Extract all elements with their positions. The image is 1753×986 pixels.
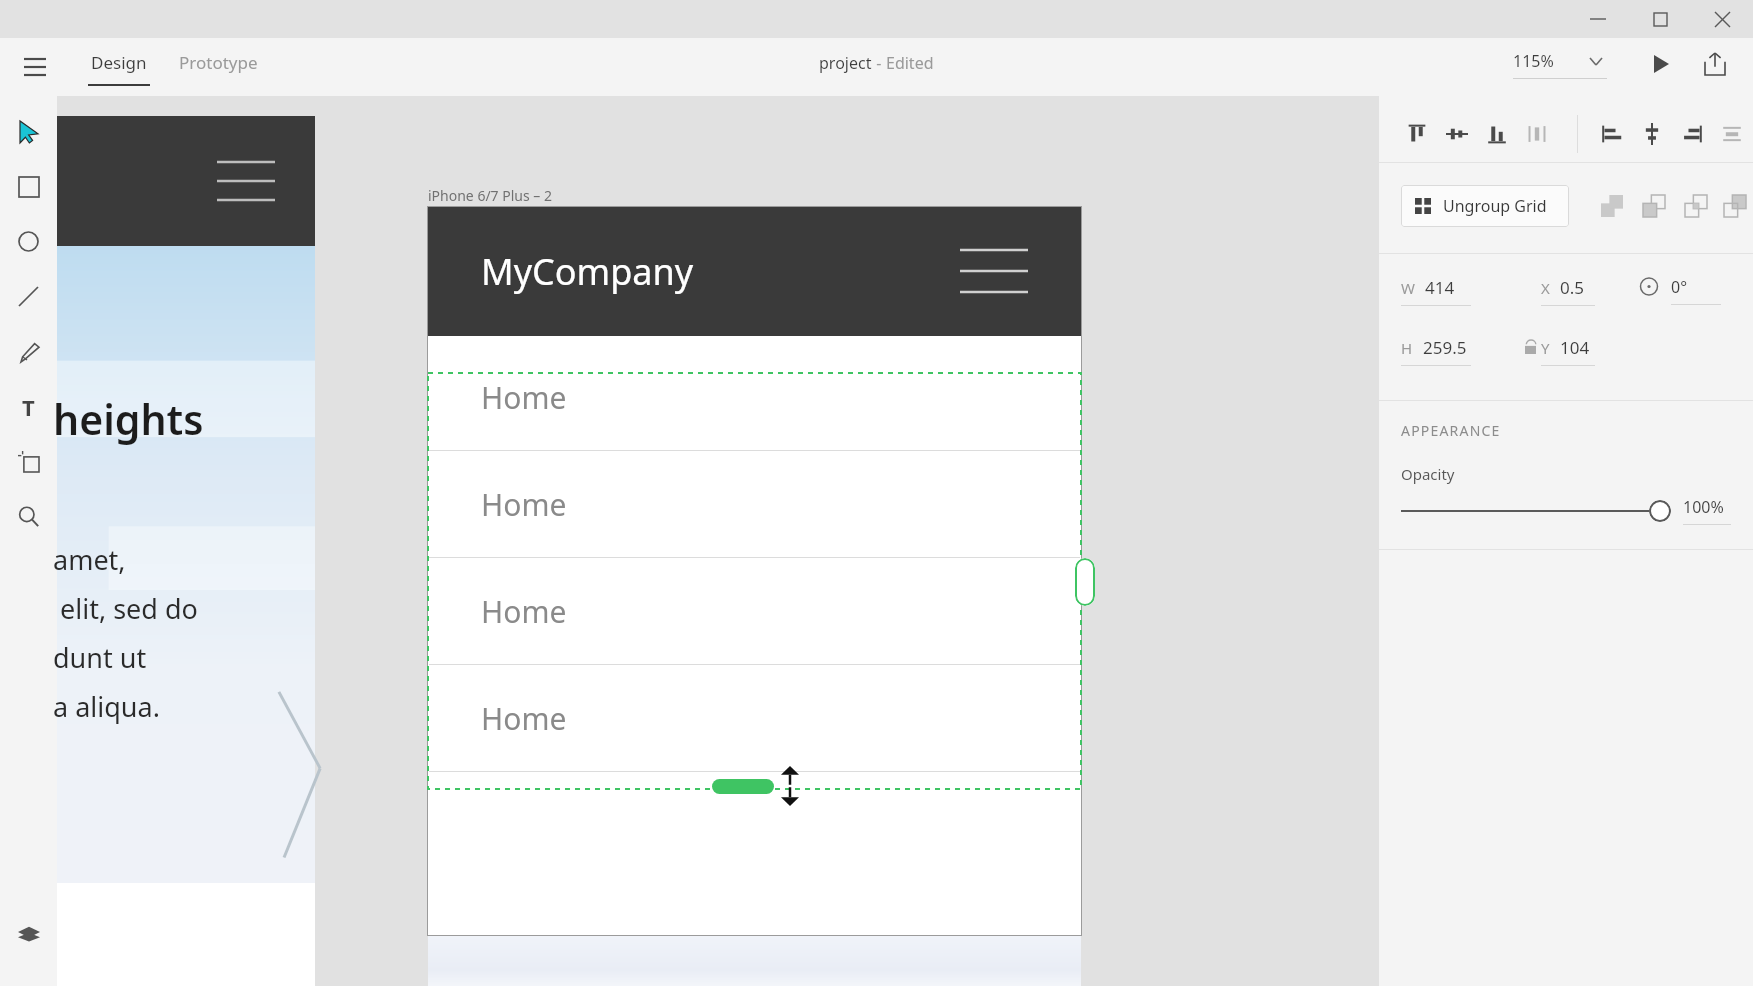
staticText: 104: [1560, 336, 1590, 359]
button[interactable]: Boolean op 3: [1675, 185, 1717, 227]
staticText: 115%: [1513, 50, 1554, 72]
staticText: a aliqua.: [53, 688, 160, 725]
staticText: project: [819, 52, 872, 74]
staticText: W: [1401, 278, 1415, 298]
staticText: H: [1401, 338, 1413, 358]
button[interactable]: Rectangle: [0, 159, 57, 214]
button[interactable]: Play preview: [1639, 42, 1683, 86]
button[interactable]: Distribute horizontally: [1712, 114, 1752, 154]
staticText: APPEARANCE: [1401, 421, 1501, 440]
staticText: 414: [1425, 276, 1455, 299]
staticText: Opacity: [1401, 464, 1455, 484]
button[interactable]: Align middle: [1437, 114, 1477, 154]
button[interactable]: Align top: [1397, 114, 1437, 154]
button[interactable]: Align left: [1592, 114, 1632, 154]
staticText: X: [1541, 278, 1550, 298]
staticText: iPhone 6/7 Plus – 2: [428, 186, 552, 205]
staticText: T: [22, 392, 35, 422]
staticText: -: [872, 52, 886, 74]
staticText: amet,: [53, 541, 126, 578]
staticText: Prototype: [179, 51, 258, 74]
staticText: Home: [481, 591, 567, 632]
staticText: elit, sed do: [53, 590, 198, 627]
button[interactable]: Boolean op 1: [1591, 185, 1633, 227]
button[interactable]: Distribute vertically: [1517, 114, 1557, 154]
button[interactable]: Home: [427, 558, 1082, 665]
button[interactable]: Home: [427, 451, 1082, 558]
staticText: Design: [91, 51, 147, 74]
button[interactable]: Resize handle: [712, 779, 774, 794]
button[interactable]: Ungroup Grid: [1401, 185, 1569, 227]
button[interactable]: Minimize: [1567, 0, 1629, 38]
staticText: 100%: [1683, 496, 1724, 518]
button[interactable]: Zoom: [0, 489, 57, 544]
staticText: MyCompany: [481, 247, 694, 296]
button[interactable]: Share: [1693, 42, 1737, 86]
button[interactable]: Artboard: [0, 434, 57, 489]
button[interactable]: Pen: [0, 324, 57, 379]
button[interactable]: Opacity slider: [1401, 499, 1669, 523]
button[interactable]: Menu: [8, 40, 62, 94]
button[interactable]: Scroll handle: [1075, 558, 1095, 606]
button[interactable]: Layers: [0, 907, 57, 962]
staticText: Ungroup Grid: [1443, 195, 1547, 217]
button[interactable]: Prototype: [172, 38, 264, 96]
button[interactable]: Home: [427, 665, 1082, 772]
button[interactable]: Close: [1691, 0, 1753, 38]
button[interactable]: Y: [1541, 336, 1621, 366]
staticText: 259.5: [1423, 336, 1467, 359]
button[interactable]: H: [1401, 336, 1497, 366]
button[interactable]: Text: [0, 379, 57, 434]
button[interactable]: Design: [86, 38, 152, 96]
staticText: dunt ut: [53, 639, 147, 676]
staticText: Home: [481, 377, 567, 418]
button[interactable]: Maximize: [1629, 0, 1691, 38]
button[interactable]: Ellipse: [0, 214, 57, 269]
staticText: Y: [1541, 338, 1550, 358]
button[interactable]: Home: [427, 344, 1082, 451]
staticText: Home: [481, 698, 567, 739]
button[interactable]: Align bottom: [1477, 114, 1517, 154]
button[interactable]: Boolean op 2: [1633, 185, 1675, 227]
staticText: 0.5: [1560, 276, 1585, 299]
button[interactable]: Line: [0, 269, 57, 324]
staticText: 0°: [1671, 276, 1688, 298]
button[interactable]: project: [819, 52, 934, 74]
button[interactable]: X: [1541, 276, 1621, 306]
button[interactable]: W: [1401, 276, 1497, 306]
button[interactable]: Align right: [1672, 114, 1712, 154]
staticText: Home: [481, 484, 567, 525]
button[interactable]: 115%: [1513, 50, 1623, 79]
staticText: heights: [53, 391, 204, 447]
button[interactable]: Boolean op 4: [1717, 185, 1753, 227]
button[interactable]: Align center: [1632, 114, 1672, 154]
staticText: Edited: [886, 52, 934, 74]
button[interactable]: Select: [0, 104, 57, 159]
